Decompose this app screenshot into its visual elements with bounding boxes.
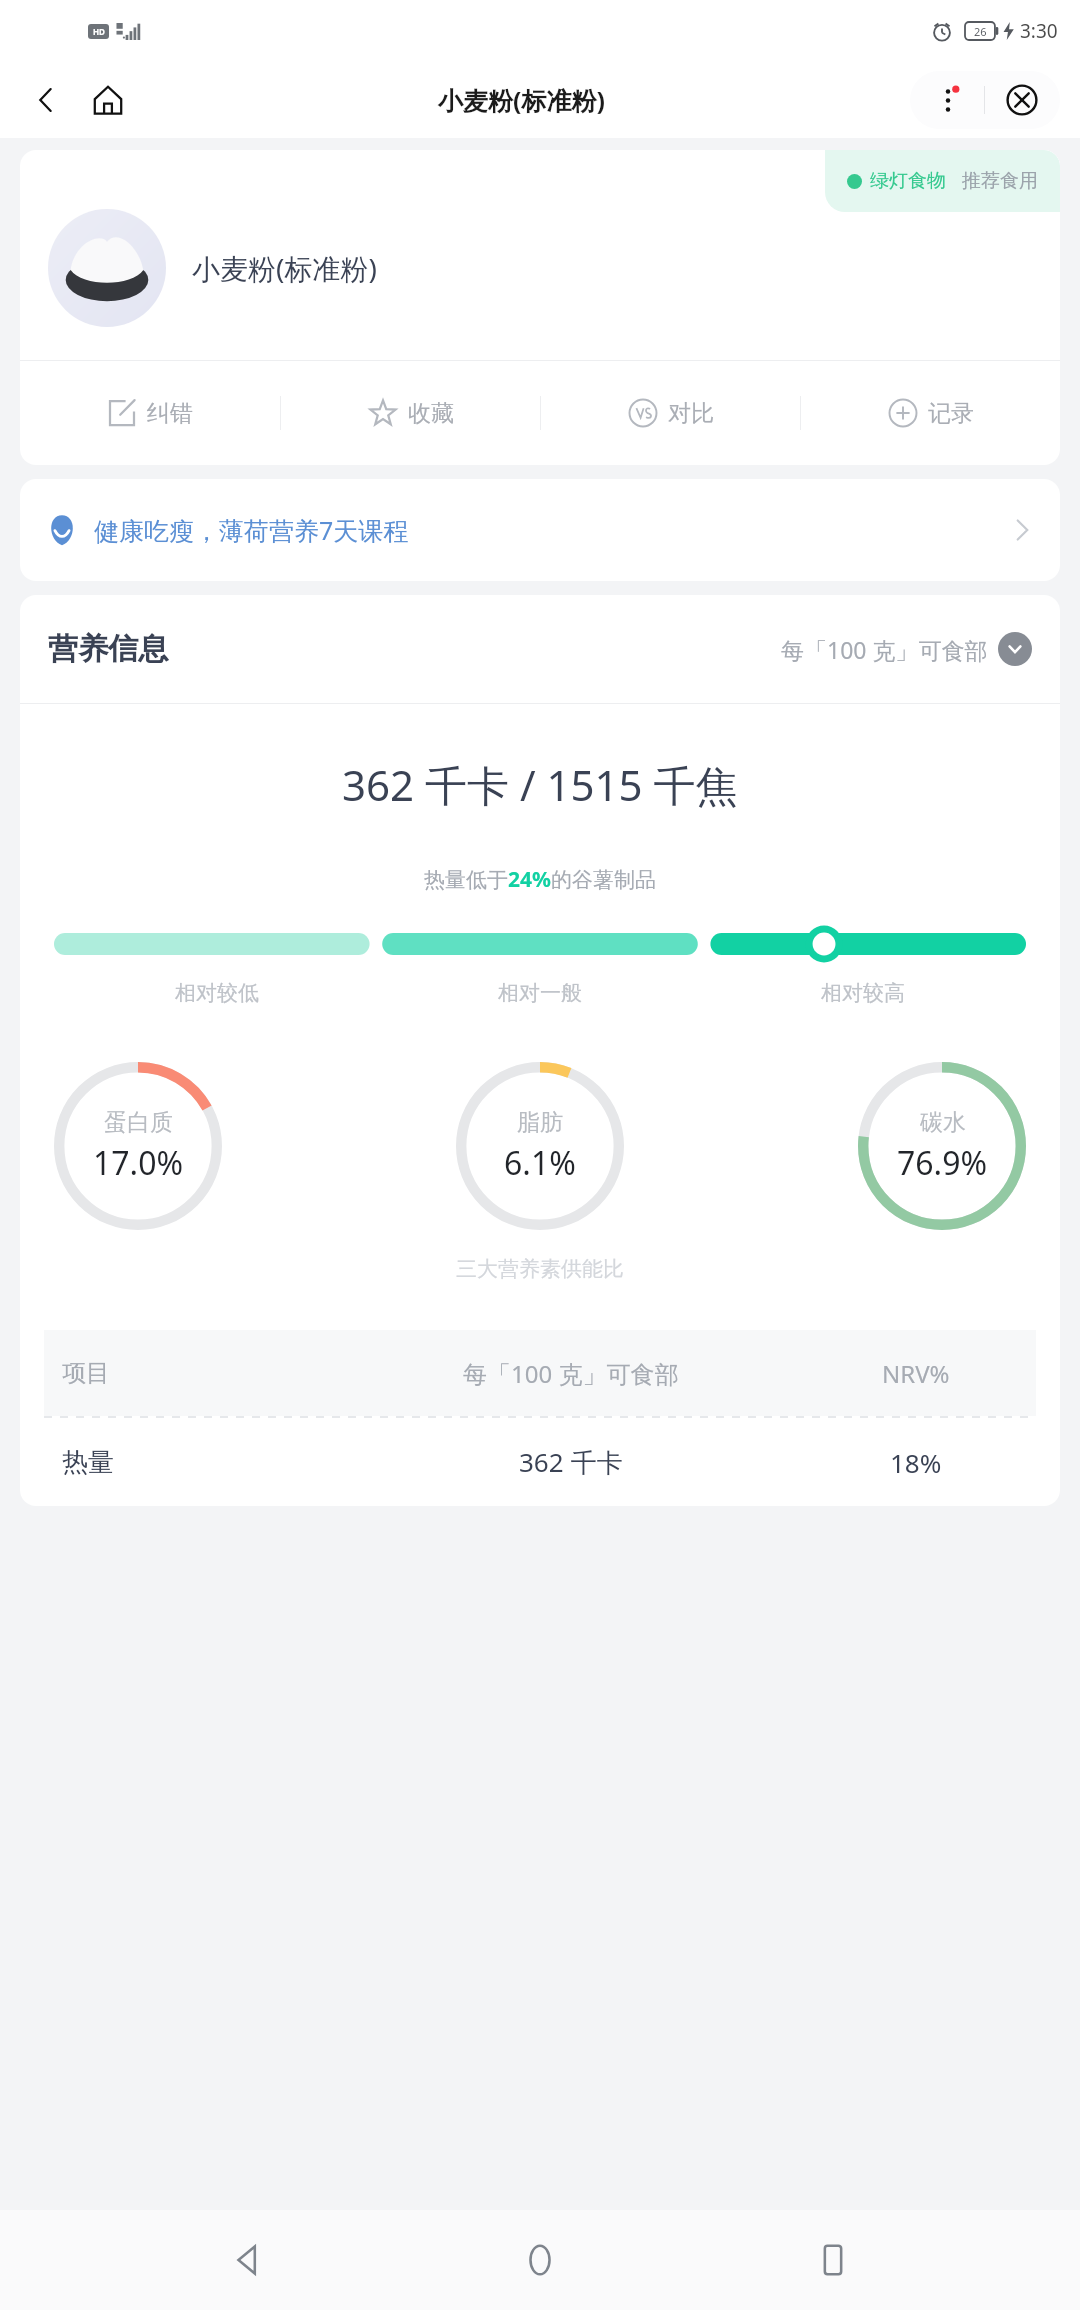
button[interactable]: More options bbox=[912, 71, 984, 129]
staticText: 相对一般 bbox=[498, 980, 582, 1006]
other: Change serving size bbox=[998, 632, 1032, 666]
staticText: 每「100 克」可食部 bbox=[463, 1357, 679, 1390]
staticText: 17.0% bbox=[93, 1141, 184, 1185]
button[interactable]: Recent apps bbox=[788, 2215, 878, 2305]
staticText: 3:30 bbox=[1020, 18, 1058, 44]
button[interactable]: 纠错 bbox=[20, 361, 280, 465]
staticText: 18% bbox=[890, 1445, 942, 1480]
staticText: 推荐食用 bbox=[962, 169, 1038, 193]
staticText: 热量低于 bbox=[424, 867, 508, 893]
button[interactable]: 健康吃瘦，薄荷营养7天课程 bbox=[20, 479, 1060, 581]
staticText: 对比 bbox=[668, 399, 714, 428]
button[interactable]: Back bbox=[20, 74, 72, 126]
staticText: 362 千卡 / 1515 千焦 bbox=[342, 756, 738, 813]
staticText: 6.1% bbox=[504, 1141, 576, 1185]
staticText: 纠错 bbox=[147, 399, 193, 428]
staticText: 健康吃瘦，薄荷营养7天课程 bbox=[94, 513, 409, 547]
staticText: 相对较高 bbox=[821, 980, 905, 1006]
staticText: 营养信息 bbox=[48, 630, 168, 668]
staticText: 76.9% bbox=[897, 1141, 988, 1185]
button[interactable]: 收藏 bbox=[281, 361, 540, 465]
button[interactable]: 对比 bbox=[541, 361, 800, 465]
button[interactable]: 每「100 克」可食部 bbox=[781, 632, 1032, 666]
staticText: 小麦粉(标准粉) bbox=[438, 83, 605, 117]
staticText: 相对较低 bbox=[175, 980, 259, 1006]
staticText: 362 千卡 bbox=[519, 1444, 623, 1480]
staticText: 蛋白质 bbox=[104, 1108, 173, 1137]
staticText: 每「100 克」可食部 bbox=[781, 634, 988, 665]
button[interactable]: Home bbox=[82, 74, 134, 126]
staticText: 项目 bbox=[62, 1358, 110, 1388]
button[interactable]: Back bbox=[203, 2215, 293, 2305]
staticText: 三大营养素供能比 bbox=[456, 1256, 624, 1282]
button[interactable]: 记录 bbox=[801, 361, 1060, 465]
staticText: 小麦粉(标准粉) bbox=[192, 249, 377, 287]
staticText: NRV% bbox=[882, 1357, 950, 1390]
button[interactable]: Close bbox=[985, 71, 1058, 129]
staticText: 绿灯食物 bbox=[870, 169, 946, 193]
staticText: 脂肪 bbox=[517, 1108, 563, 1137]
staticText: 收藏 bbox=[408, 399, 454, 428]
staticText: 24% bbox=[508, 865, 551, 894]
button[interactable]: Home bbox=[495, 2215, 585, 2305]
staticText: 的谷薯制品 bbox=[551, 867, 656, 893]
staticText: 26 bbox=[974, 24, 987, 39]
staticText: 记录 bbox=[928, 399, 974, 428]
button[interactable]: 绿灯食物 bbox=[847, 150, 1038, 212]
staticText: HD bbox=[93, 26, 105, 37]
staticText: 碳水 bbox=[920, 1108, 966, 1137]
staticText: 热量 bbox=[62, 1446, 114, 1479]
